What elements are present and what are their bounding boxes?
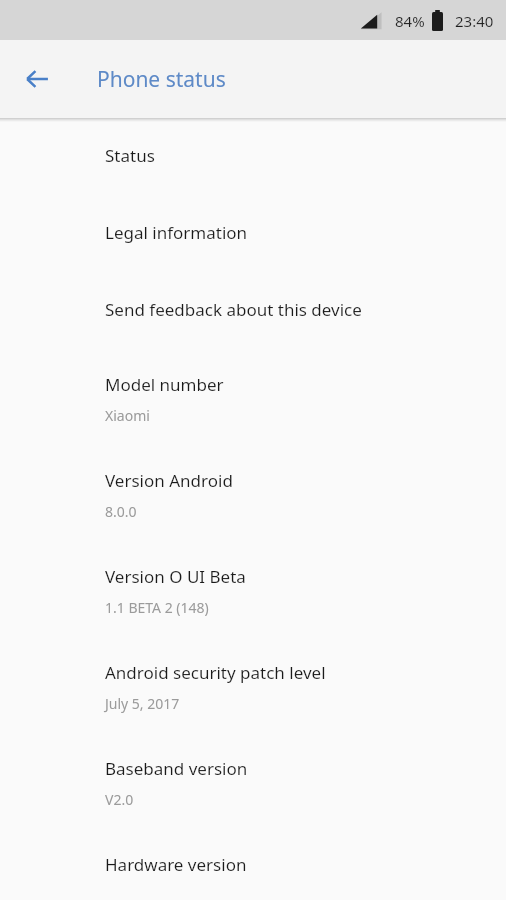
button[interactable]: Send feedback about this device <box>0 272 506 349</box>
button[interactable]: Version O UI Beta <box>0 541 506 637</box>
staticText: Baseband version <box>105 757 248 780</box>
staticText: Model number <box>105 373 224 396</box>
staticText: 1.1 BETA 2 (148) <box>105 598 209 617</box>
staticText: Legal information <box>105 221 248 244</box>
button[interactable]: Status <box>0 122 506 195</box>
staticText: 8.0.0 <box>105 502 137 521</box>
staticText: Hardware version <box>105 853 247 876</box>
staticText: 84% <box>395 11 425 31</box>
staticText: Android security patch level <box>105 661 326 684</box>
staticText: Version O UI Beta <box>105 565 246 588</box>
staticText: Xiaomi <box>105 406 150 425</box>
staticText: 23:40 <box>455 11 494 31</box>
staticText: Status <box>105 144 155 167</box>
button[interactable]: Baseband version <box>0 733 506 829</box>
button[interactable]: Legal information <box>0 195 506 272</box>
button[interactable]: Android security patch level <box>0 637 506 733</box>
button[interactable]: Hardware version <box>0 829 506 900</box>
button[interactable]: Model number <box>0 349 506 445</box>
staticText: Send feedback about this device <box>105 298 362 321</box>
staticText: July 5, 2017 <box>105 694 180 713</box>
staticText: Version Android <box>105 469 233 492</box>
staticText: Phone status <box>97 65 226 94</box>
button[interactable]: Version Android <box>0 445 506 541</box>
staticText: V2.0 <box>105 790 134 809</box>
button[interactable]: Back <box>12 54 62 104</box>
